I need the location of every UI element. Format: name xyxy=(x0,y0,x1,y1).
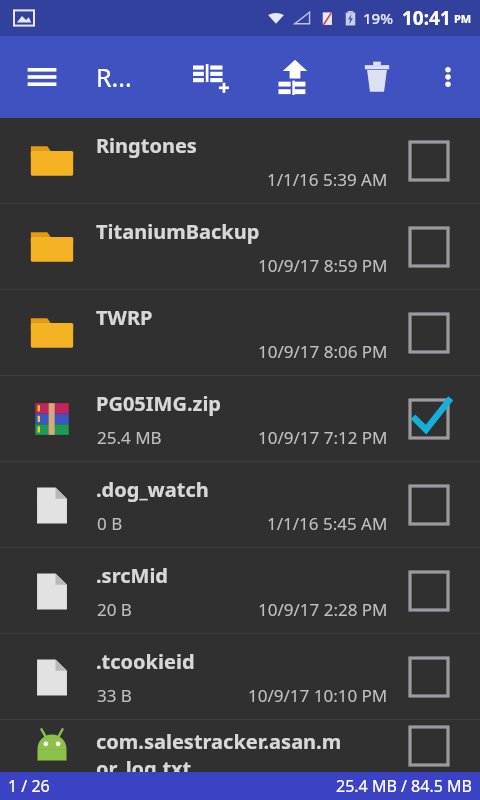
button[interactable]: Select .srcMid xyxy=(398,560,460,622)
staticText: 33 B xyxy=(97,684,132,707)
staticText: 10/9/17 7:12 PM xyxy=(258,426,388,449)
button[interactable]: Select .dog_watch xyxy=(398,474,460,536)
button[interactable]: .tcookieid xyxy=(0,634,480,720)
button[interactable]: Select TWRP xyxy=(398,302,460,364)
button[interactable]: Select Ringtones xyxy=(398,130,460,192)
staticText: .dog_watch xyxy=(96,476,209,503)
button[interactable]: New xyxy=(182,48,240,106)
button[interactable]: Ringtones xyxy=(0,118,480,204)
staticText: PG05IMG.zip xyxy=(96,390,221,417)
staticText: Ringtones xyxy=(96,132,197,159)
button[interactable]: Select com.salestracker.asan.m or_log.tx… xyxy=(398,720,460,772)
button[interactable]: Select .tcookieid xyxy=(398,646,460,708)
staticText: 1 / 26 xyxy=(8,775,50,797)
staticText: 1/1/16 5:39 AM xyxy=(267,168,388,191)
staticText: 10/9/17 8:59 PM xyxy=(258,254,388,277)
staticText: 19% xyxy=(363,8,393,28)
staticText: 25.4 MB / 84.5 MB xyxy=(336,775,472,797)
button[interactable]: TitaniumBackup xyxy=(0,204,480,290)
staticText: com.salestracker.asan.m or_log.txt xyxy=(96,728,342,780)
staticText: .srcMid xyxy=(96,562,168,589)
staticText: 20 B xyxy=(97,598,132,621)
staticText: PM xyxy=(454,11,472,26)
staticText: TitaniumBackup xyxy=(96,218,260,245)
button[interactable]: Delete xyxy=(348,48,406,106)
button[interactable]: Select PG05IMG.zip xyxy=(398,388,460,450)
button[interactable]: PG05IMG.zip xyxy=(0,376,480,462)
button[interactable]: More options xyxy=(422,51,474,103)
staticText: 10/9/17 10:10 PM xyxy=(248,684,388,707)
button[interactable]: R... xyxy=(96,47,132,107)
button[interactable]: Menu xyxy=(16,51,68,103)
staticText: 1/1/16 5:45 AM xyxy=(267,512,388,535)
staticText: 25.4 MB xyxy=(97,426,162,449)
staticText: 0 B xyxy=(97,512,123,535)
staticText: 10/9/17 8:06 PM xyxy=(258,340,388,363)
button[interactable]: Select TitaniumBackup xyxy=(398,216,460,278)
staticText: R... xyxy=(96,60,132,94)
staticText: 10/9/17 2:28 PM xyxy=(258,598,388,621)
staticText: TWRP xyxy=(96,304,153,331)
button[interactable]: Move up xyxy=(266,48,324,106)
staticText: 10:41 xyxy=(402,5,451,31)
button[interactable]: .dog_watch xyxy=(0,462,480,548)
button[interactable]: .srcMid xyxy=(0,548,480,634)
button[interactable]: com.salestracker.asan.m or_log.txt xyxy=(0,720,480,772)
button[interactable]: TWRP xyxy=(0,290,480,376)
staticText: .tcookieid xyxy=(96,648,195,675)
